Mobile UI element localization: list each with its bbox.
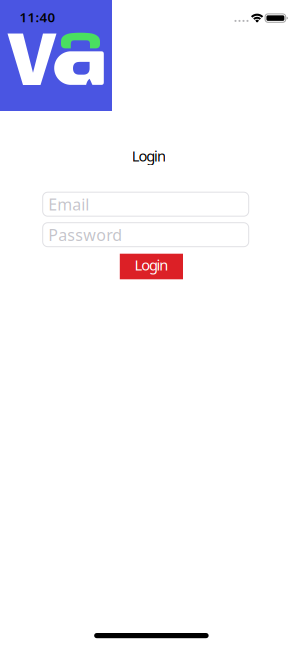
staticText: Email — [48, 194, 89, 215]
staticText: 11:40 — [19, 8, 55, 26]
staticText: Password — [48, 224, 122, 245]
button[interactable]: Login — [120, 254, 183, 279]
staticText: Login — [134, 255, 168, 275]
staticText: Login — [132, 146, 166, 165]
